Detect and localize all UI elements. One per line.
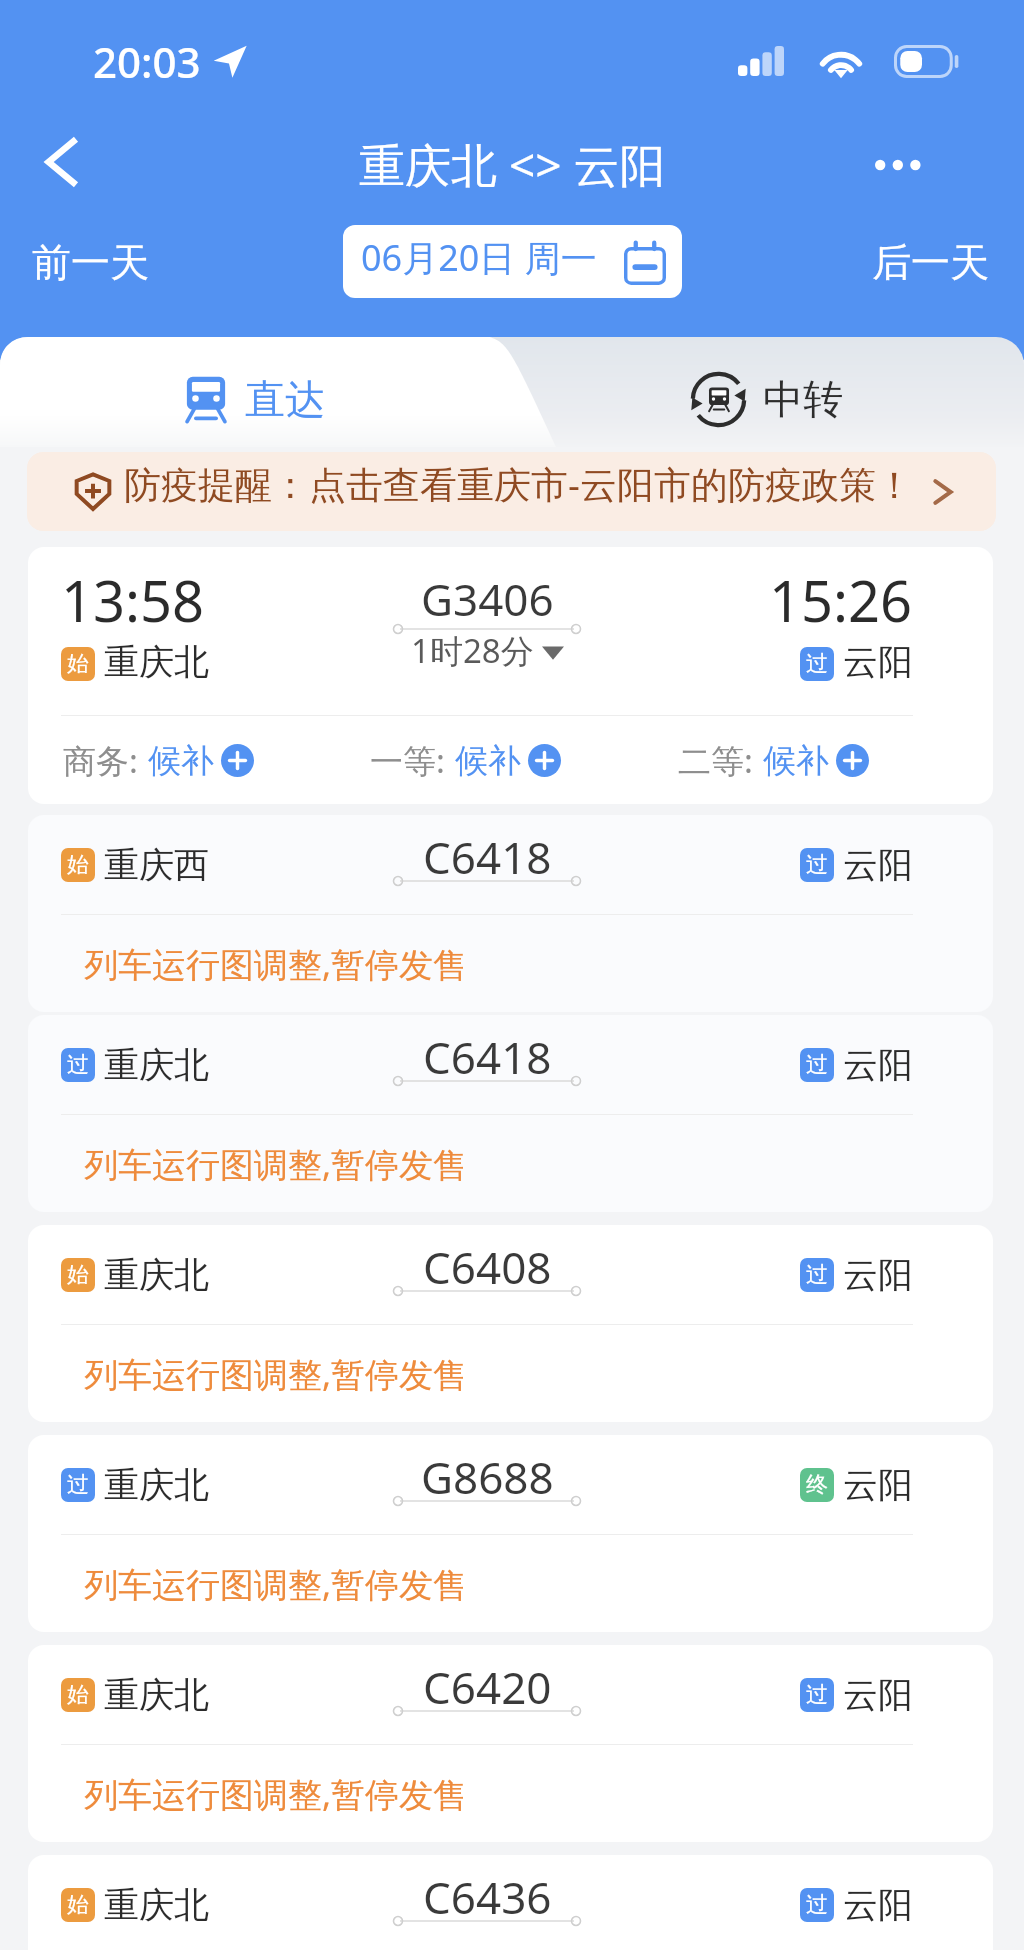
staticText: C6418: [423, 827, 552, 883]
staticText: 重庆北: [104, 640, 209, 684]
staticText: C6408: [423, 1237, 552, 1293]
staticText: 列车运行图调整,暂停发售: [84, 1561, 468, 1607]
staticText: 重庆北: [104, 1673, 209, 1717]
staticText: 过: [806, 650, 828, 678]
button[interactable]: 始: [28, 1645, 993, 1842]
staticText: 过: [806, 1051, 828, 1079]
button[interactable]: Back: [22, 124, 98, 200]
staticText: 始: [67, 1261, 89, 1289]
staticText: 前一天: [32, 238, 149, 287]
staticText: 过: [806, 1681, 828, 1709]
staticText: 直达: [245, 374, 325, 424]
staticText: C6420: [423, 1657, 552, 1713]
staticText: 重庆北: [104, 1253, 209, 1297]
button[interactable]: 始: [28, 1225, 993, 1422]
staticText: 过: [67, 1051, 89, 1079]
staticText: 列车运行图调整,暂停发售: [84, 1351, 468, 1397]
staticText: 候补: [763, 740, 829, 782]
button[interactable]: 06月20日 周一: [343, 225, 682, 298]
button[interactable]: 后一天: [866, 232, 995, 293]
staticText: 云阳: [843, 1253, 913, 1297]
staticText: 列车运行图调整,暂停发售: [84, 1141, 468, 1187]
button[interactable]: 13:58: [28, 547, 993, 804]
button[interactable]: More options: [860, 127, 936, 203]
staticText: 云阳: [843, 1883, 913, 1927]
staticText: 候补: [148, 740, 214, 782]
staticText: 始: [67, 650, 89, 678]
staticText: G8688: [421, 1447, 554, 1503]
button[interactable]: 直达: [185, 344, 325, 454]
staticText: 重庆北: [104, 1043, 209, 1087]
staticText: 15:26: [769, 562, 913, 638]
staticText: 列车运行图调整,暂停发售: [84, 1771, 468, 1817]
staticText: 二等:: [678, 738, 753, 783]
button[interactable]: 过: [28, 1435, 993, 1632]
staticText: 候补: [455, 740, 521, 782]
staticText: 重庆北 <> 云阳: [359, 133, 666, 196]
staticText: 一等:: [370, 738, 445, 783]
button[interactable]: [0, 337, 556, 447]
button[interactable]: 一等:: [370, 738, 561, 783]
staticText: 06月20日 周一: [361, 233, 597, 282]
button[interactable]: 前一天: [26, 232, 155, 293]
button[interactable]: 始: [28, 1855, 993, 1950]
staticText: 重庆北: [104, 1463, 209, 1507]
button[interactable]: 商务:: [63, 738, 254, 783]
staticText: 始: [67, 1891, 89, 1919]
staticText: 始: [67, 1681, 89, 1709]
staticText: 云阳: [843, 1043, 913, 1087]
staticText: C6418: [423, 1027, 552, 1083]
staticText: 云阳: [843, 640, 913, 684]
staticText: 1时28分: [411, 628, 534, 673]
staticText: 防疫提醒：点击查看重庆市-云阳市的防疫政策！: [124, 458, 913, 509]
staticText: 商务:: [63, 738, 138, 783]
staticText: 过: [806, 1261, 828, 1289]
staticText: G3406: [421, 569, 554, 629]
staticText: 20:03: [93, 33, 201, 90]
button[interactable]: 二等:: [678, 738, 869, 783]
staticText: 过: [806, 851, 828, 879]
button[interactable]: 防疫提醒：点击查看重庆市-云阳市的防疫政策！: [27, 452, 996, 531]
staticText: 过: [67, 1471, 89, 1499]
staticText: 重庆北: [104, 1883, 209, 1927]
staticText: 始: [67, 851, 89, 879]
staticText: C6436: [423, 1867, 552, 1923]
button[interactable]: 过: [28, 1015, 993, 1212]
staticText: 重庆西: [104, 843, 209, 887]
staticText: 中转: [763, 374, 843, 424]
staticText: 13:58: [61, 562, 205, 638]
staticText: 列车运行图调整,暂停发售: [84, 941, 468, 987]
button[interactable]: 始: [28, 815, 993, 1012]
staticText: 后一天: [872, 238, 989, 287]
button[interactable]: 中转: [690, 344, 843, 454]
staticText: 云阳: [843, 843, 913, 887]
staticText: 过: [806, 1891, 828, 1919]
staticText: 终: [806, 1471, 828, 1499]
staticText: 云阳: [843, 1673, 913, 1717]
staticText: 云阳: [843, 1463, 913, 1507]
